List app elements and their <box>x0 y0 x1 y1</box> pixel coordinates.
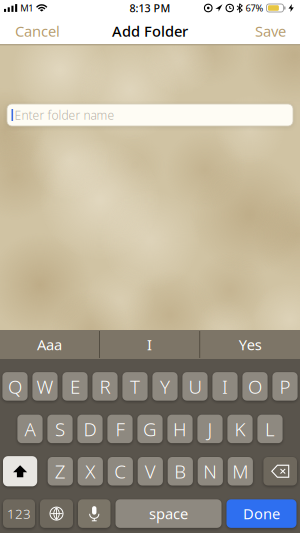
staticText: I <box>147 335 152 354</box>
button[interactable]: N <box>198 457 223 485</box>
button[interactable]: A <box>17 415 43 443</box>
staticText: L <box>265 416 275 441</box>
staticText: E <box>70 374 80 399</box>
staticText: K <box>234 416 245 441</box>
button[interactable]: J <box>197 415 223 443</box>
button[interactable]: Enter folder name <box>7 104 293 126</box>
button[interactable]: S <box>47 415 73 443</box>
staticText: Aaa <box>37 335 62 354</box>
button[interactable]: Done <box>226 499 296 528</box>
staticText: M <box>232 459 248 484</box>
button[interactable]: U <box>182 372 208 401</box>
staticText: 123 <box>7 505 31 522</box>
staticText: H <box>173 416 187 441</box>
staticText: A <box>24 416 35 441</box>
staticText: N <box>203 459 217 484</box>
button[interactable]: L <box>257 415 283 443</box>
button[interactable]: Save <box>255 21 286 41</box>
staticText: G <box>143 416 157 441</box>
staticText: Yes <box>239 335 262 354</box>
button[interactable]: Cancel <box>15 21 60 41</box>
staticText: S <box>55 416 65 441</box>
staticText: X <box>85 459 95 484</box>
button[interactable]: I <box>212 372 238 401</box>
button[interactable]: K <box>227 415 253 443</box>
staticText: U <box>188 374 201 399</box>
button[interactable]: Shift <box>3 456 37 486</box>
staticText: B <box>174 459 186 484</box>
staticText: D <box>83 416 96 441</box>
button[interactable]: D <box>77 415 103 443</box>
button[interactable]: G <box>137 415 163 443</box>
button[interactable]: Q <box>2 372 28 401</box>
button[interactable]: Delete <box>263 457 297 485</box>
staticText: I <box>222 374 228 399</box>
staticText: Save <box>255 21 286 41</box>
staticText: T <box>130 374 140 399</box>
staticText: R <box>99 374 110 399</box>
staticText: W <box>36 374 53 399</box>
staticText: Y <box>160 374 170 399</box>
button[interactable]: R <box>92 372 118 401</box>
button[interactable]: H <box>167 415 193 443</box>
button[interactable]: 123 <box>3 499 35 528</box>
button[interactable]: X <box>78 457 103 485</box>
button[interactable]: O <box>242 372 268 401</box>
button[interactable]: Next keyboard <box>40 499 73 528</box>
button[interactable]: space <box>115 499 221 528</box>
staticText: C <box>114 459 126 484</box>
staticText: Q <box>8 374 22 399</box>
button[interactable]: T <box>122 372 148 401</box>
staticText: Done <box>243 504 280 523</box>
button[interactable]: C <box>108 457 133 485</box>
staticText: F <box>115 416 124 441</box>
staticText: O <box>248 374 262 399</box>
staticText: J <box>207 416 212 441</box>
button[interactable]: Y <box>152 372 178 401</box>
staticText: Add Folder <box>112 21 188 41</box>
button[interactable]: W <box>32 372 58 401</box>
button[interactable]: Aaa <box>0 330 99 359</box>
button[interactable]: Z <box>48 457 73 485</box>
staticText: 8:13 PM <box>129 1 170 15</box>
staticText: M1 <box>20 2 33 14</box>
button[interactable]: Dictate <box>78 499 110 528</box>
button[interactable]: E <box>62 372 88 401</box>
button[interactable]: P <box>272 372 298 401</box>
staticText: Cancel <box>15 21 60 41</box>
button[interactable]: V <box>138 457 163 485</box>
button[interactable]: F <box>107 415 133 443</box>
button[interactable]: B <box>168 457 193 485</box>
staticText: 67% <box>245 2 263 14</box>
button[interactable]: Yes <box>200 330 300 359</box>
button[interactable]: I <box>100 330 199 359</box>
staticText: Enter folder name <box>15 107 115 123</box>
staticText: P <box>279 374 290 399</box>
staticText: V <box>145 459 156 484</box>
staticText: Z <box>55 459 66 484</box>
button[interactable]: M <box>228 457 253 485</box>
staticText: space <box>149 504 188 523</box>
